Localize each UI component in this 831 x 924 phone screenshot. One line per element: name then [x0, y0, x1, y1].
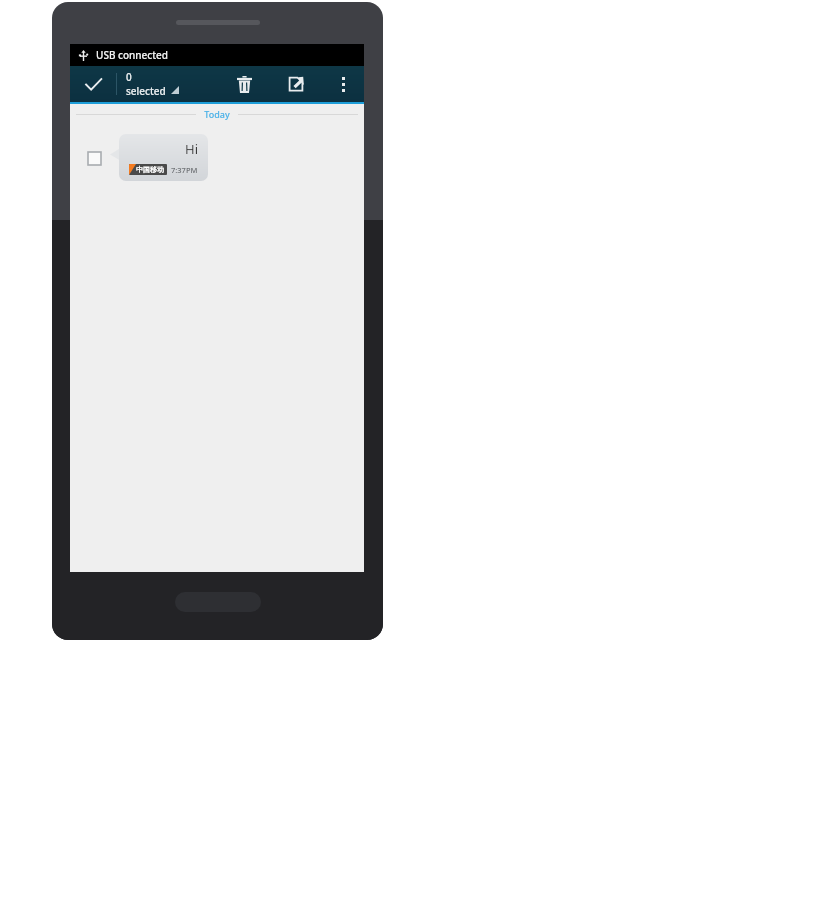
staticText: selected [126, 84, 166, 98]
button[interactable]: Done [70, 66, 116, 102]
staticText: 0 [126, 70, 132, 84]
button[interactable]: More options [322, 66, 364, 102]
staticText: 中国移动 [136, 165, 164, 174]
staticText: Today [204, 108, 230, 120]
button[interactable]: Select message [80, 144, 108, 172]
staticText: 7:37PM [171, 165, 198, 175]
staticText: USB connected [96, 48, 168, 62]
button[interactable]: 0 [117, 66, 207, 102]
button[interactable]: Share [270, 66, 322, 102]
button[interactable]: Hi [119, 134, 208, 181]
button[interactable]: Delete [218, 66, 270, 102]
staticText: Hi [185, 140, 198, 158]
